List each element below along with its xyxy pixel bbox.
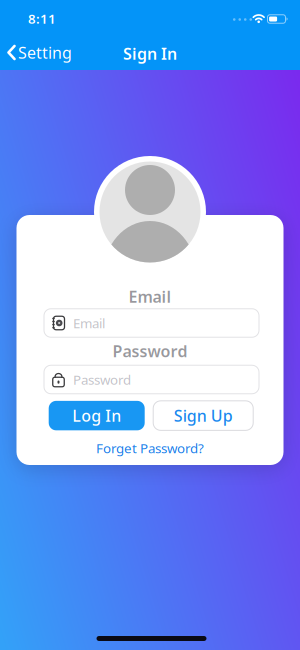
staticText: Email: [73, 314, 105, 332]
button[interactable]: Setting: [7, 42, 72, 63]
button[interactable]: Sign Up: [153, 401, 253, 430]
staticText: Password: [112, 340, 187, 362]
staticText: Sign Up: [174, 405, 233, 426]
staticText: Sign In: [123, 43, 177, 64]
staticText: Forget Password?: [96, 439, 204, 457]
button[interactable]: Log In: [49, 401, 145, 430]
staticText: Password: [73, 371, 131, 388]
staticText: 8:11: [28, 10, 56, 27]
staticText: Email: [128, 286, 171, 307]
button[interactable]: Forget Password?: [96, 439, 204, 457]
staticText: Log In: [72, 405, 121, 426]
staticText: Setting: [18, 42, 72, 63]
